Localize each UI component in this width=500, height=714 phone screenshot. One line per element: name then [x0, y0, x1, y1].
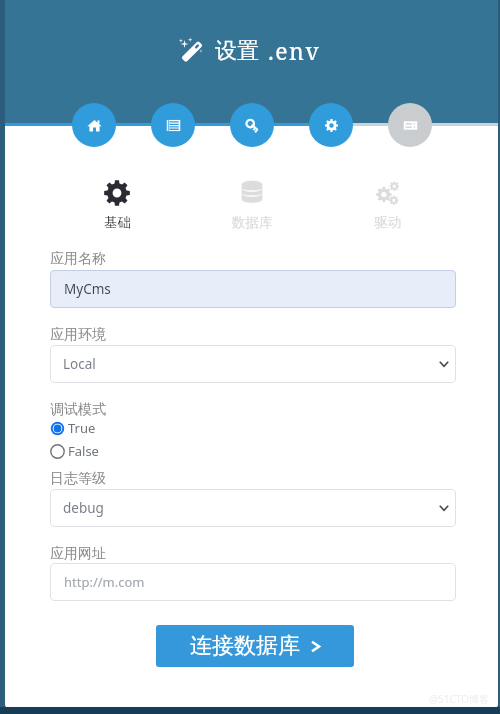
- button[interactable]: Settings: [309, 103, 353, 147]
- staticText: 日志等级: [50, 470, 106, 488]
- staticText: Local: [63, 355, 96, 373]
- staticText: 调试模式: [50, 401, 106, 419]
- staticText: 驱动: [374, 214, 401, 231]
- button[interactable]: 数据库: [207, 180, 297, 231]
- staticText: 应用网址: [50, 545, 106, 563]
- button[interactable]: http://m.com: [50, 563, 456, 601]
- staticText: .env: [268, 35, 321, 66]
- button[interactable]: False: [50, 441, 99, 461]
- button[interactable]: True: [50, 418, 96, 438]
- button[interactable]: Overview: [151, 103, 195, 147]
- staticText: 应用环境: [50, 326, 106, 344]
- button[interactable]: Home: [72, 103, 116, 147]
- staticText: http://m.com: [64, 573, 145, 591]
- staticText: True: [68, 419, 96, 437]
- staticText: debug: [63, 499, 104, 517]
- button[interactable]: 驱动: [342, 180, 432, 231]
- staticText: 连接数据库: [190, 632, 300, 660]
- staticText: False: [68, 442, 99, 460]
- staticText: 应用名称: [50, 250, 106, 268]
- staticText: 数据库: [232, 214, 273, 231]
- staticText: @51CTO博客: [429, 692, 489, 706]
- staticText: 设置: [215, 37, 259, 65]
- button[interactable]: 连接数据库: [156, 625, 354, 667]
- button[interactable]: Local: [50, 345, 456, 383]
- button[interactable]: Database: [388, 103, 432, 147]
- button[interactable]: MyCms: [50, 270, 456, 308]
- button[interactable]: 基础: [72, 180, 162, 231]
- staticText: 基础: [104, 214, 131, 231]
- button[interactable]: debug: [50, 489, 456, 527]
- staticText: MyCms: [64, 280, 111, 298]
- button[interactable]: Permissions: [230, 103, 274, 147]
